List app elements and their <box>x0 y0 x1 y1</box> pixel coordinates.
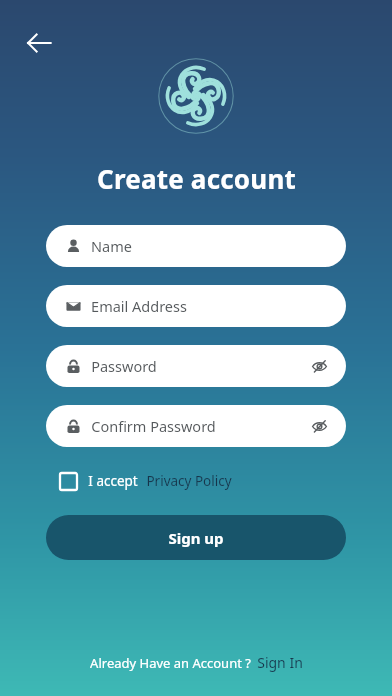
staticText: Email Address <box>91 296 187 316</box>
staticText: Sign In <box>257 653 303 672</box>
button[interactable]: Name <box>46 225 346 267</box>
staticText: Sign up <box>168 528 224 548</box>
staticText: Name <box>91 236 132 256</box>
button[interactable]: Sign up <box>46 515 346 560</box>
staticText: Create account <box>97 161 296 196</box>
button[interactable]: Password <box>46 345 346 387</box>
button[interactable]: Back <box>18 22 60 64</box>
button[interactable]: Confirm Password <box>46 405 346 447</box>
button[interactable]: Privacy Policy <box>146 472 232 490</box>
staticText: Confirm Password <box>91 416 216 436</box>
button[interactable]: Email Address <box>46 285 346 327</box>
staticText: Privacy Policy <box>146 472 232 490</box>
staticText: Already Have an Account ? <box>90 654 251 672</box>
button[interactable]: Show password <box>308 415 330 437</box>
button[interactable]: Show password <box>308 355 330 377</box>
button[interactable]: Sign In <box>257 653 303 672</box>
button[interactable]: Accept privacy policy <box>55 468 81 494</box>
staticText: I accept <box>88 472 138 490</box>
staticText: Password <box>91 356 157 376</box>
